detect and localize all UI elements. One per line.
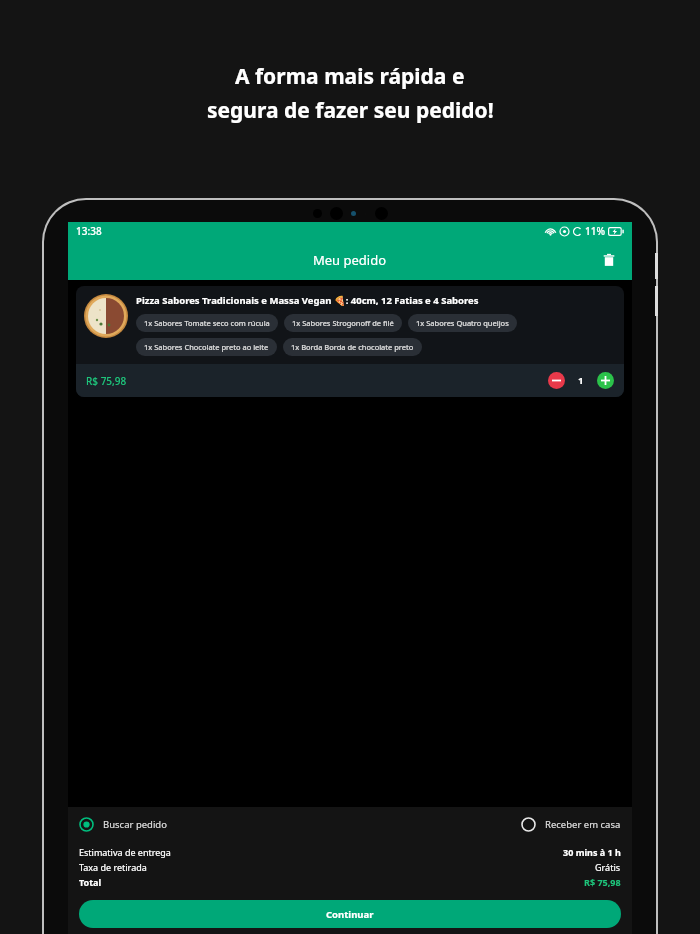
- staticText: 11%: [585, 224, 605, 238]
- staticText: segura de fazer seu pedido!: [207, 96, 494, 125]
- staticText: Total: [79, 876, 102, 888]
- staticText: Estimativa de entrega: [79, 846, 171, 858]
- staticText: 1: [578, 374, 584, 387]
- staticText: R$ 75,98: [86, 374, 127, 388]
- staticText: Taxa de retirada: [79, 861, 147, 873]
- button[interactable]: Excluir pedido: [594, 245, 624, 275]
- staticText: 30 mins à 1 h: [563, 846, 621, 858]
- staticText: 1x Borda Borda de chocolate preto: [291, 342, 414, 352]
- button[interactable]: 1x Sabores Quatro queijos: [408, 314, 517, 332]
- staticText: 1x Sabores Chocolate preto ao leite: [144, 342, 269, 352]
- staticText: 1x Sabores Strogonoff de filé: [292, 318, 394, 328]
- staticText: 1x Sabores Quatro queijos: [416, 318, 509, 328]
- button[interactable]: Continuar: [79, 900, 621, 928]
- staticText: Meu pedido: [313, 251, 387, 269]
- button[interactable]: 1x Sabores Tomate seco com rúcula: [136, 314, 278, 332]
- staticText: Receber em casa: [545, 818, 621, 831]
- staticText: 1x Sabores Tomate seco com rúcula: [144, 318, 270, 328]
- button[interactable]: Adicionar: [597, 372, 614, 389]
- button[interactable]: Pizza Sabores Tradicionais e Massa Vegan…: [76, 286, 624, 397]
- button[interactable]: Remover: [548, 372, 565, 389]
- button[interactable]: 1x Sabores Strogonoff de filé: [284, 314, 402, 332]
- staticText: R$ 75,98: [584, 876, 621, 888]
- staticText: A forma mais rápida e: [235, 62, 465, 91]
- button[interactable]: Buscar pedido: [79, 817, 167, 832]
- staticText: Buscar pedido: [103, 818, 167, 831]
- button[interactable]: 1x Borda Borda de chocolate preto: [283, 338, 422, 356]
- staticText: Pizza Sabores Tradicionais e Massa Vegan…: [136, 294, 479, 307]
- staticText: 13:38: [76, 224, 102, 238]
- button[interactable]: 1x Sabores Chocolate preto ao leite: [136, 338, 277, 356]
- staticText: Grátis: [595, 861, 621, 873]
- staticText: Continuar: [326, 908, 374, 921]
- button[interactable]: Receber em casa: [521, 817, 621, 832]
